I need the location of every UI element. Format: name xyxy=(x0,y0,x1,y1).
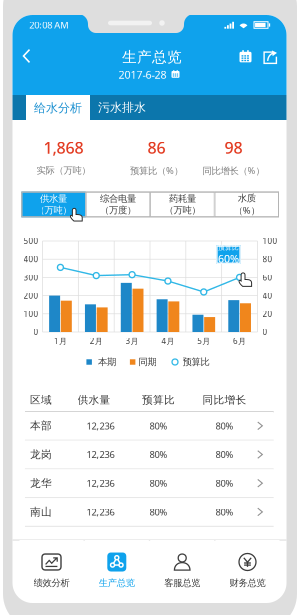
staticText: 龙华 xyxy=(30,477,52,490)
staticText: 综合电量 xyxy=(100,193,136,204)
staticText: 80% xyxy=(215,448,233,461)
button[interactable]: 本部 xyxy=(25,412,274,441)
button[interactable]: Back xyxy=(13,42,39,70)
button[interactable]: 南山 xyxy=(25,498,274,527)
staticText: 供水量 xyxy=(77,393,110,406)
staticText: 100 xyxy=(23,308,38,319)
staticText: 80% xyxy=(149,477,167,489)
button[interactable]: 客服总览 xyxy=(150,540,214,594)
staticText: 0 xyxy=(33,327,38,337)
staticText: 绩效分析 xyxy=(33,577,69,589)
staticText: 80% xyxy=(149,506,167,518)
staticText: 财务总览 xyxy=(229,577,265,589)
staticText: 0 xyxy=(262,327,267,337)
staticText: 3月 xyxy=(126,336,139,346)
staticText: 6月 xyxy=(233,336,246,346)
staticText: 1,868 xyxy=(43,137,83,158)
staticText: 80 xyxy=(262,254,272,264)
staticText: 200 xyxy=(23,290,38,301)
staticText: 40 xyxy=(262,290,272,301)
staticText: 生产总览 xyxy=(99,577,135,589)
staticText: 同比增长 xyxy=(202,393,246,406)
staticText: 本部 xyxy=(30,419,52,432)
staticText: 12,236 xyxy=(86,448,114,461)
staticText: 南山 xyxy=(30,505,52,518)
staticText: 12,236 xyxy=(86,477,114,489)
staticText: 20:08 AM xyxy=(29,19,68,31)
staticText: 2月 xyxy=(90,336,103,346)
staticText: 药耗量 xyxy=(169,193,196,204)
staticText: 本期 xyxy=(98,356,116,368)
staticText: 同比增长（%） xyxy=(202,164,264,177)
staticText: 100 xyxy=(262,236,277,246)
button[interactable]: 绩效分析 xyxy=(19,540,83,594)
button[interactable]: 药耗量 xyxy=(150,192,215,217)
staticText: 预算比（%） xyxy=(130,164,183,177)
staticText: 客服总览 xyxy=(164,577,200,589)
button[interactable]: Share xyxy=(258,44,282,70)
staticText: 12,236 xyxy=(86,420,114,432)
staticText: 12,236 xyxy=(86,506,114,518)
staticText: 区域 xyxy=(30,393,52,406)
staticText: 500 xyxy=(23,236,38,246)
button[interactable]: 污水排水 xyxy=(90,95,154,120)
staticText: 80% xyxy=(215,477,233,489)
button[interactable]: 水质 xyxy=(215,192,279,217)
staticText: 300 xyxy=(23,272,38,283)
button[interactable]: 给水分析 xyxy=(26,95,90,121)
staticText: 60% xyxy=(218,252,239,266)
staticText: （万吨） xyxy=(164,204,200,216)
staticText: 98 xyxy=(224,137,242,158)
staticText: 预算比 xyxy=(218,243,239,252)
staticText: 预算比 xyxy=(183,356,210,368)
staticText: 5月 xyxy=(197,336,210,346)
staticText: 污水排水 xyxy=(98,100,146,115)
staticText: 预算比 xyxy=(142,393,175,406)
staticText: 给水分析 xyxy=(34,101,82,115)
button[interactable]: 财务总览 xyxy=(215,540,279,594)
staticText: 80% xyxy=(215,420,233,432)
staticText: （万吨） xyxy=(36,204,72,216)
staticText: 86 xyxy=(147,137,165,158)
staticText: （万度） xyxy=(100,204,136,216)
staticText: 同期 xyxy=(138,356,156,368)
staticText: 水质 xyxy=(238,192,256,204)
staticText: （%） xyxy=(234,204,260,216)
staticText: 2017-6-28 xyxy=(118,67,166,82)
staticText: 60 xyxy=(262,272,272,283)
staticText: 400 xyxy=(23,254,38,264)
staticText: 1月 xyxy=(54,336,67,346)
staticText: 实际（万吨） xyxy=(36,165,90,176)
staticText: 龙岗 xyxy=(30,448,52,461)
staticText: 生产总览 xyxy=(122,48,182,66)
staticText: 80% xyxy=(149,420,167,432)
staticText: 80% xyxy=(215,506,233,518)
button[interactable]: 综合电量 xyxy=(86,192,150,217)
button[interactable]: 龙华 xyxy=(25,469,274,498)
button[interactable]: 龙岗 xyxy=(25,441,274,469)
button[interactable]: 供水量 xyxy=(21,192,86,217)
staticText: 4月 xyxy=(161,336,174,346)
button[interactable]: 生产总览 xyxy=(85,540,149,594)
button[interactable]: Calendar xyxy=(233,44,257,70)
staticText: 20 xyxy=(262,308,272,319)
staticText: 供水量 xyxy=(40,193,67,204)
staticText: 80% xyxy=(149,448,167,461)
